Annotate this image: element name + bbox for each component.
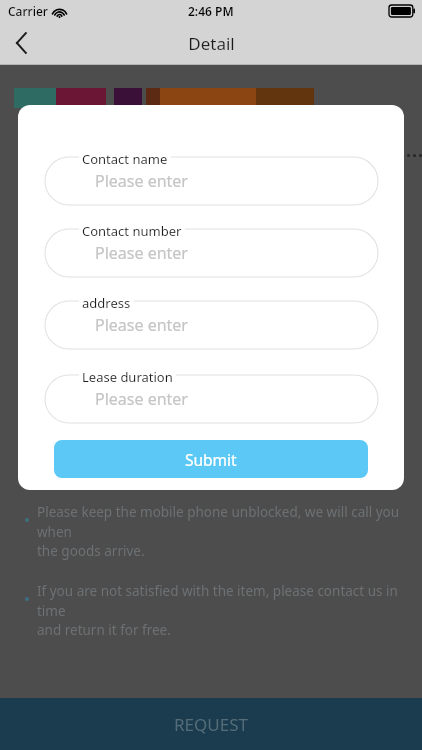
staticText: Please enter [95,242,188,264]
button[interactable]: REQUEST [0,698,422,750]
staticText: 2:46 PM [188,3,234,19]
button[interactable]: Back [0,22,44,64]
staticText: Contact name [82,150,168,168]
staticText: Detail [188,32,235,55]
staticText: Please enter [95,170,188,192]
staticText: If you are not satisfied with the item, … [37,582,400,639]
staticText: Please enter [95,388,188,410]
staticText: Carrier [8,3,48,19]
button[interactable]: Please enter [45,301,378,349]
staticText: address [82,294,131,312]
button[interactable]: Please enter [45,157,378,205]
button[interactable]: Please enter [45,375,378,423]
staticText: Submit [185,449,237,470]
staticText: Please enter [95,314,188,336]
button[interactable]: Please enter [45,229,378,277]
staticText: Contact number [82,222,182,240]
staticText: Please keep the mobile phone unblocked, … [37,503,400,560]
button[interactable]: Submit [54,440,368,478]
staticText: Lease duration [82,368,173,386]
staticText: REQUEST [174,713,248,736]
